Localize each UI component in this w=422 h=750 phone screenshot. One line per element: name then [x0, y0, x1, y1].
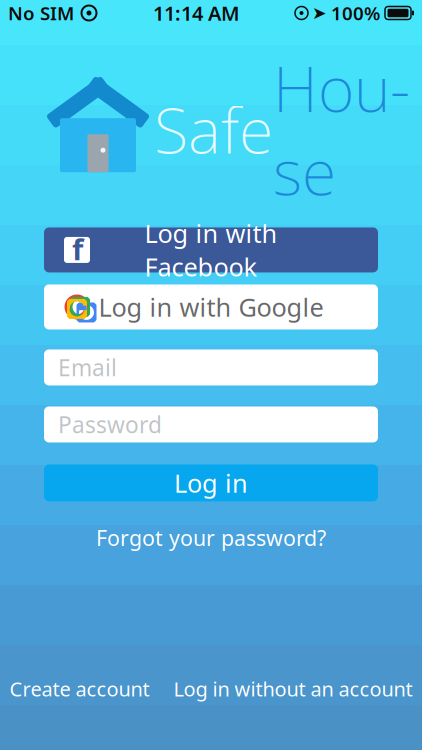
button[interactable]: Log in with Google [44, 284, 378, 329]
staticText: No SIM [8, 1, 74, 25]
staticText: Safe [154, 88, 273, 171]
button[interactable]: Log in without an account [165, 667, 420, 710]
staticText: Log in with Google [98, 290, 323, 324]
staticText: Log in without an account [173, 675, 412, 702]
staticText: Forgot your password? [96, 523, 326, 552]
staticText: Log in [174, 466, 248, 500]
button[interactable]: Email [44, 349, 378, 385]
button[interactable]: Create account [1, 667, 157, 710]
staticText: Create account [9, 675, 149, 702]
staticText: 11:14 AM [153, 0, 240, 26]
staticText: Password [58, 409, 162, 439]
staticText: f [72, 229, 83, 268]
button[interactable]: Password [44, 406, 378, 442]
button[interactable]: Forgot your password? [86, 517, 336, 558]
staticText: Log in with Facebook [144, 216, 277, 284]
button[interactable]: Log in [44, 464, 378, 501]
staticText: ➤ [312, 3, 327, 23]
button[interactable]: f [44, 227, 378, 272]
staticText: 100% [331, 1, 380, 25]
staticText: House [273, 46, 410, 212]
staticText: Email [58, 352, 117, 382]
